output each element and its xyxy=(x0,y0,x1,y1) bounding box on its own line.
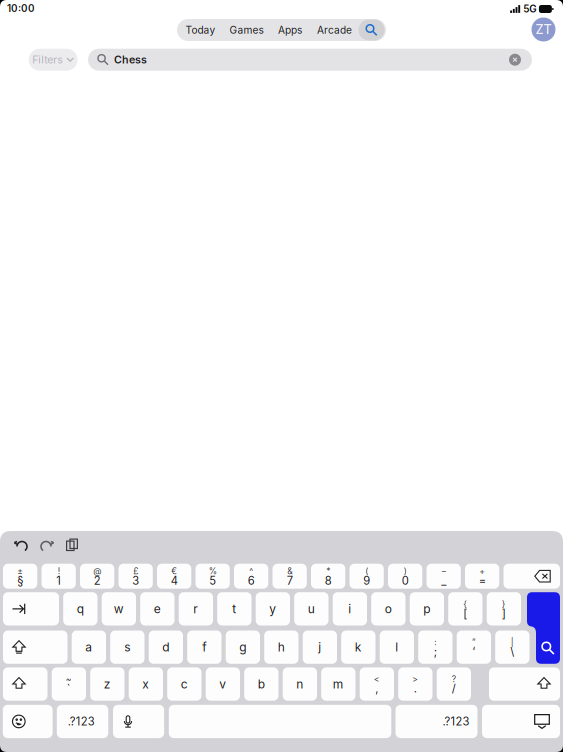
button[interactable]: w xyxy=(102,592,136,625)
button[interactable]: Search xyxy=(358,19,384,40)
button[interactable]: .?123 xyxy=(395,705,477,738)
staticText: / xyxy=(452,682,456,695)
button[interactable]: ) xyxy=(388,564,422,589)
button[interactable]: | xyxy=(495,630,529,664)
button[interactable]: t xyxy=(217,592,251,625)
staticText: Today xyxy=(185,24,215,36)
button[interactable]: Filters xyxy=(29,49,78,71)
button[interactable]: r xyxy=(179,592,213,625)
button[interactable]: z xyxy=(90,667,124,701)
button[interactable]: y xyxy=(256,592,290,625)
button[interactable]: Shift xyxy=(3,667,47,701)
button[interactable]: } xyxy=(487,592,521,625)
staticText: 5G xyxy=(523,3,536,15)
button[interactable]: < xyxy=(360,667,394,701)
button[interactable]: ~ xyxy=(52,667,86,701)
button[interactable]: Paste xyxy=(57,534,87,556)
button[interactable]: Account xyxy=(531,17,555,41)
button[interactable]: d xyxy=(149,630,183,664)
button[interactable]: b xyxy=(244,667,278,701)
button[interactable]: Redo xyxy=(32,534,62,556)
staticText: 3 xyxy=(132,574,139,587)
staticText: 0 xyxy=(402,574,409,587)
staticText: w xyxy=(114,602,124,616)
button[interactable]: u xyxy=(294,592,328,625)
button[interactable]: Games xyxy=(223,19,269,41)
button[interactable]: £ xyxy=(118,564,153,589)
button[interactable]: > xyxy=(398,667,432,701)
staticText: } xyxy=(502,599,506,609)
button[interactable]: & xyxy=(272,564,307,589)
button[interactable]: Delete xyxy=(503,564,560,589)
staticText: \ xyxy=(510,645,514,658)
staticText: .?123 xyxy=(68,715,95,728)
button[interactable]: .?123 xyxy=(57,705,108,738)
button[interactable]: j xyxy=(303,630,337,664)
button[interactable]: “ xyxy=(457,630,491,664)
button[interactable]: Undo xyxy=(6,534,36,556)
button[interactable]: { xyxy=(448,592,482,625)
staticText: 6 xyxy=(248,574,255,587)
staticText: = xyxy=(479,574,486,587)
button[interactable]: – xyxy=(426,564,461,589)
staticText: q xyxy=(77,602,84,616)
button[interactable]: Hide keyboard xyxy=(482,705,560,738)
button[interactable]: ± xyxy=(3,564,37,589)
button[interactable]: * xyxy=(311,564,345,589)
staticText: x xyxy=(142,677,149,691)
staticText: – xyxy=(442,566,446,576)
button[interactable]: o xyxy=(371,592,405,625)
staticText: 7 xyxy=(287,574,293,587)
button[interactable]: ! xyxy=(41,564,76,589)
button[interactable]: l xyxy=(380,630,414,664)
button[interactable]: Search field, Chess xyxy=(88,49,532,71)
staticText: b xyxy=(258,677,265,691)
staticText: p xyxy=(423,602,430,616)
button[interactable]: e xyxy=(140,592,174,625)
button[interactable]: ? xyxy=(437,667,471,701)
button[interactable]: Shift xyxy=(489,667,560,701)
staticText: Apps xyxy=(278,24,302,36)
staticText: h xyxy=(278,640,285,654)
button[interactable]: v xyxy=(206,667,240,701)
staticText: ^ xyxy=(249,566,253,576)
button[interactable]: Search xyxy=(0,0,563,752)
staticText: .?123 xyxy=(442,715,469,728)
button[interactable]: a xyxy=(72,630,106,664)
button[interactable]: Caps Lock xyxy=(3,630,67,664)
button[interactable]: ( xyxy=(349,564,384,589)
button[interactable]: s xyxy=(110,630,144,664)
button[interactable]: ^ xyxy=(234,564,268,589)
button[interactable]: Apps xyxy=(269,19,310,41)
button[interactable]: f xyxy=(187,630,221,664)
button[interactable]: Arcade xyxy=(310,19,358,41)
button[interactable]: x xyxy=(129,667,163,701)
button[interactable]: q xyxy=(63,592,97,625)
staticText: ` xyxy=(67,682,71,695)
staticText: z xyxy=(104,677,111,691)
button[interactable]: h xyxy=(264,630,298,664)
button[interactable]: Today xyxy=(177,19,223,41)
button[interactable]: @ xyxy=(80,564,114,589)
button[interactable]: % xyxy=(195,564,230,589)
button[interactable]: n xyxy=(283,667,317,701)
button[interactable]: g xyxy=(226,630,260,664)
button[interactable]: + xyxy=(465,564,499,589)
button[interactable]: k xyxy=(341,630,375,664)
button[interactable]: Tab xyxy=(3,592,59,625)
button[interactable]: i xyxy=(333,592,367,625)
button[interactable]: m xyxy=(321,667,355,701)
staticText: ) xyxy=(404,566,407,576)
button[interactable]: Dictate xyxy=(113,705,164,738)
staticText: “ xyxy=(472,637,476,647)
button[interactable]: Emoji xyxy=(3,705,53,738)
button[interactable]: c xyxy=(167,667,201,701)
staticText: Arcade xyxy=(317,24,352,36)
button[interactable]: : xyxy=(418,630,452,664)
staticText: e xyxy=(154,602,161,616)
staticText: . xyxy=(414,682,417,695)
button[interactable]: p xyxy=(410,592,444,625)
staticText: < xyxy=(374,674,380,684)
button[interactable]: € xyxy=(157,564,191,589)
